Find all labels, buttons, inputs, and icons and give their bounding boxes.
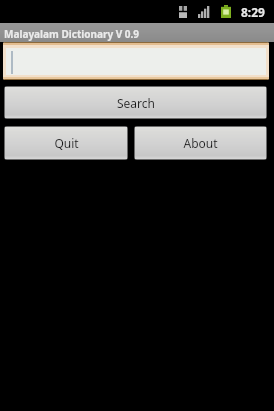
button[interactable]: About bbox=[134, 126, 267, 160]
other: Mobile data bbox=[179, 6, 187, 18]
staticText: About bbox=[183, 135, 218, 151]
button[interactable]: Quit bbox=[4, 126, 128, 160]
staticText: 8:29 bbox=[241, 4, 265, 20]
staticText: Search bbox=[117, 95, 155, 111]
other: Battery bbox=[221, 5, 231, 18]
staticText: Malayalam Dictionary V 0.9 bbox=[4, 27, 140, 41]
button[interactable]: Search word input field bbox=[3, 42, 269, 80]
other: Signal strength bbox=[198, 6, 210, 18]
button[interactable]: Search bbox=[4, 86, 267, 119]
staticText: Quit bbox=[54, 135, 79, 151]
